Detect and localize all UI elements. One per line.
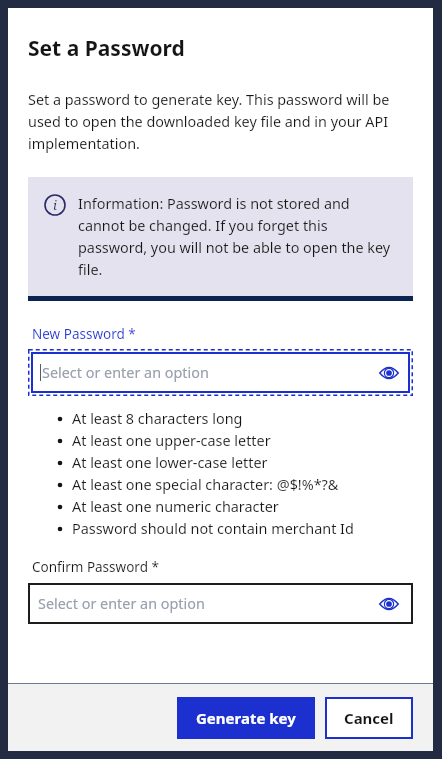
staticText: At least 8 characters long: [72, 409, 243, 429]
staticText: Select or enter an option: [42, 363, 378, 383]
staticText: i: [53, 196, 57, 214]
button[interactable]: Show password: [378, 362, 400, 384]
staticText: At least one upper-case letter: [72, 431, 271, 451]
staticText: New Password *: [32, 325, 136, 343]
staticText: At least one special character: @$!%*?&: [72, 475, 339, 495]
button[interactable]: Generate key: [177, 697, 315, 739]
button[interactable]: Show password: [378, 593, 400, 615]
staticText: Confirm Password *: [32, 558, 159, 576]
staticText: Select or enter an option: [38, 594, 378, 614]
staticText: Information: Password is not stored and …: [78, 194, 397, 279]
staticText: At least one numeric character: [72, 497, 279, 517]
button[interactable]: Cancel: [325, 697, 413, 739]
staticText: Password should not contain merchant Id: [72, 519, 354, 539]
staticText: Set a Password: [28, 34, 185, 63]
staticText: Generate key: [196, 708, 296, 728]
button[interactable]: Select or enter an option: [31, 352, 410, 393]
staticText: At least one lower-case letter: [72, 453, 268, 473]
staticText: Set a password to generate key. This pas…: [28, 90, 413, 153]
staticText: Cancel: [344, 708, 394, 728]
button[interactable]: Select or enter an option: [28, 583, 413, 624]
